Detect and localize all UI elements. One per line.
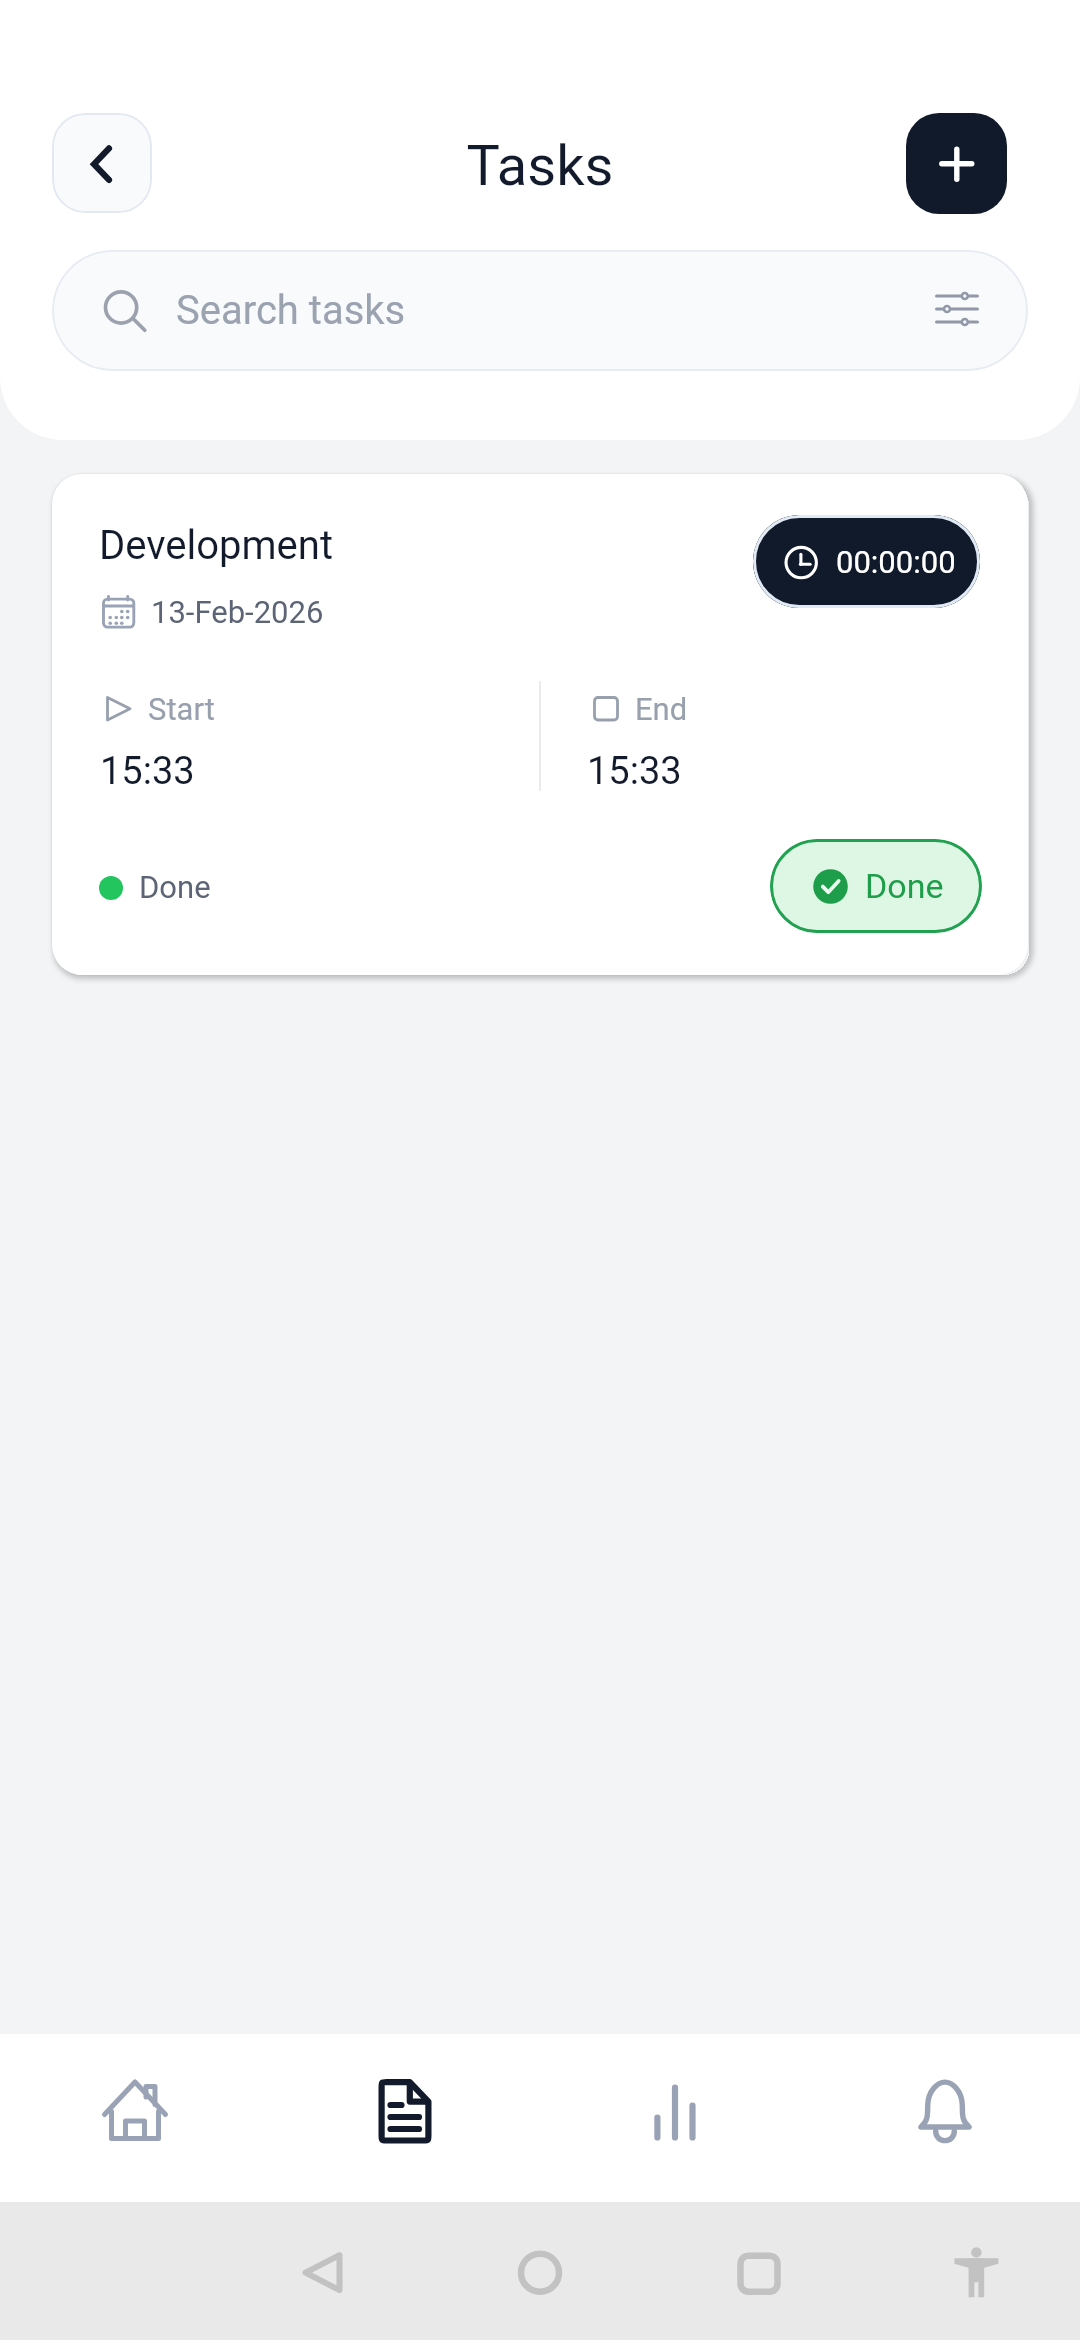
button[interactable]: Home [0, 2034, 270, 2202]
staticText: Done [139, 869, 211, 905]
staticText: 13-Feb-2026 [151, 594, 324, 630]
button[interactable]: Add task [906, 113, 1007, 214]
staticText: Tasks [0, 133, 1080, 199]
staticText: Search tasks [176, 287, 406, 334]
staticText: 00:00:00 [836, 544, 956, 580]
button[interactable]: Notifications [810, 2034, 1080, 2202]
staticText: 15:33 [587, 749, 682, 794]
button[interactable]: 00:00:00 [753, 515, 980, 608]
button[interactable]: Search tasks [52, 250, 1028, 371]
staticText: 15:33 [100, 749, 195, 794]
staticText: Development [99, 522, 334, 569]
button[interactable]: Development [52, 474, 1028, 975]
staticText: Done [865, 866, 944, 906]
button[interactable]: Done [770, 839, 982, 933]
button[interactable]: Tasks [270, 2034, 540, 2202]
button[interactable]: Back [52, 113, 152, 213]
button[interactable]: Statistics [540, 2034, 810, 2202]
button[interactable]: Filter [912, 266, 1002, 356]
staticText: End [635, 691, 688, 727]
staticText: Start [148, 691, 215, 727]
